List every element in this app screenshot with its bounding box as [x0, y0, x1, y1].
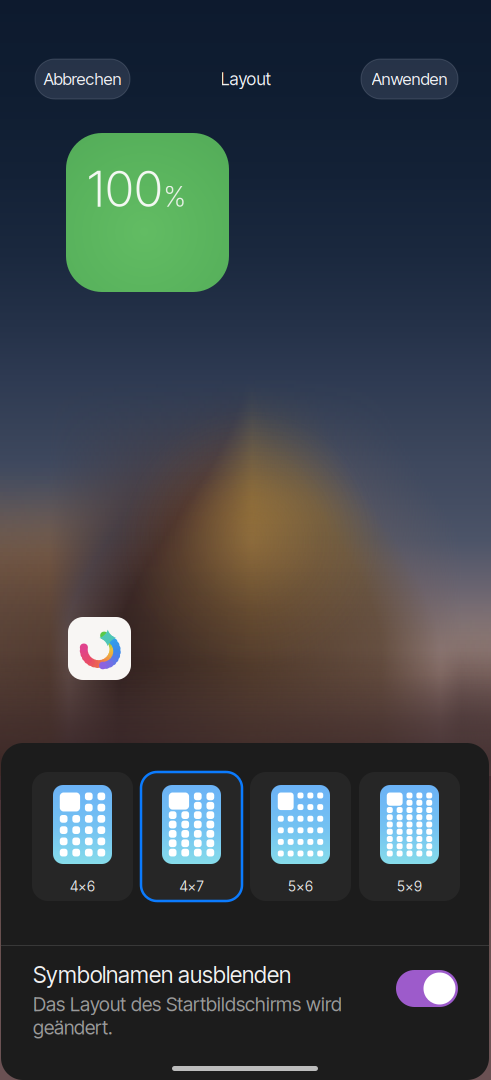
staticText: 4×6 [70, 878, 95, 895]
staticText: Layout [220, 68, 270, 89]
staticText: Abbrechen [43, 69, 121, 89]
button[interactable]: Symbolnamen ausblenden [396, 970, 458, 1007]
staticText: 100 [87, 159, 163, 219]
button[interactable]: 4×7 [141, 772, 242, 901]
staticText: Anwenden [371, 69, 447, 89]
staticText: % [164, 180, 186, 214]
staticText: Das Layout des Startbildschirms wird geä… [33, 992, 342, 1039]
button[interactable]: 4×6 [32, 772, 133, 901]
button[interactable]: 5×6 [250, 772, 351, 901]
staticText: Symbolnamen ausblenden [33, 961, 291, 988]
button[interactable]: 5×9 [359, 772, 460, 901]
staticText: 5×9 [397, 878, 422, 895]
button[interactable]: Abbrechen [35, 59, 130, 99]
button[interactable]: Anwenden [361, 59, 458, 99]
staticText: 5×6 [288, 878, 313, 895]
staticText: 4×7 [179, 878, 203, 895]
